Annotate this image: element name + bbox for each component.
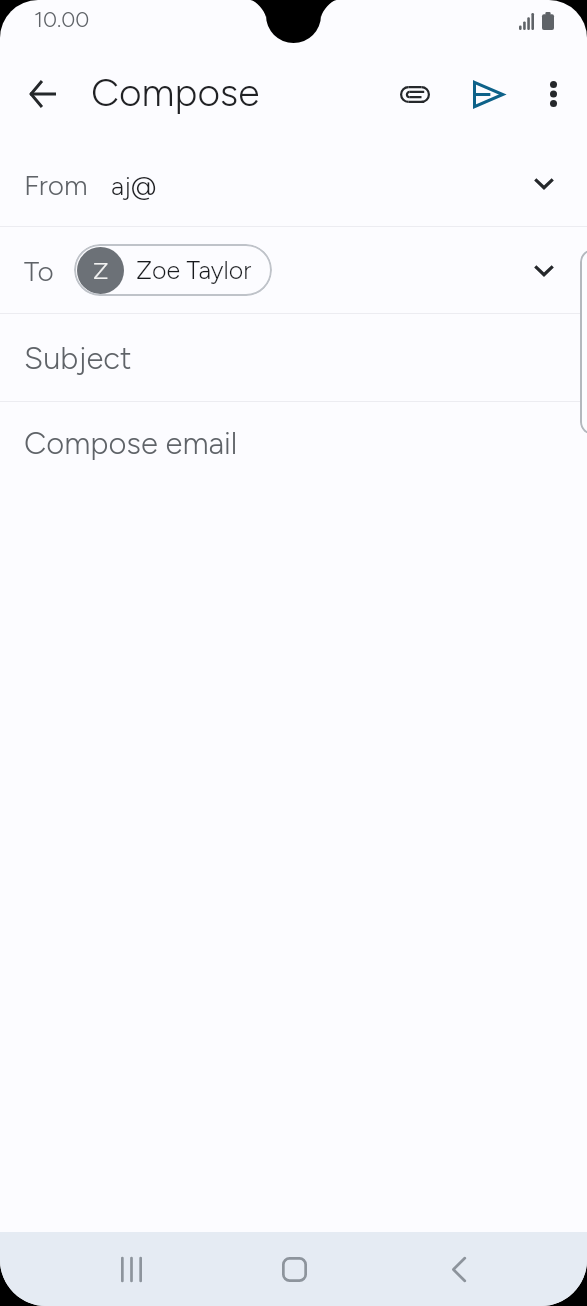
button[interactable]: Z	[74, 244, 272, 296]
button[interactable]: Home	[261, 1236, 327, 1302]
staticText: 10.00	[34, 6, 90, 32]
button[interactable]: Compose email	[0, 401, 587, 1232]
button[interactable]: Back	[17, 68, 69, 120]
staticText: aj@	[111, 170, 157, 201]
staticText: Compose email	[24, 425, 238, 462]
button[interactable]: Attach file	[388, 67, 442, 121]
staticText: Subject	[24, 340, 132, 377]
button[interactable]: Back	[426, 1236, 492, 1302]
staticText: Z	[93, 256, 109, 285]
button[interactable]: Subject	[0, 313, 587, 401]
button[interactable]: From	[0, 140, 587, 226]
staticText: Zoe Taylor	[136, 255, 252, 285]
button[interactable]: Send	[461, 67, 515, 121]
button[interactable]: To	[0, 226, 587, 313]
button[interactable]: Expand From	[518, 157, 570, 209]
staticText: To	[24, 254, 54, 288]
button[interactable]: Expand To	[518, 244, 570, 296]
staticText: From	[24, 168, 88, 202]
button[interactable]: More options	[526, 67, 580, 121]
button[interactable]: Recent apps	[98, 1236, 164, 1302]
staticText: Compose	[91, 69, 260, 116]
